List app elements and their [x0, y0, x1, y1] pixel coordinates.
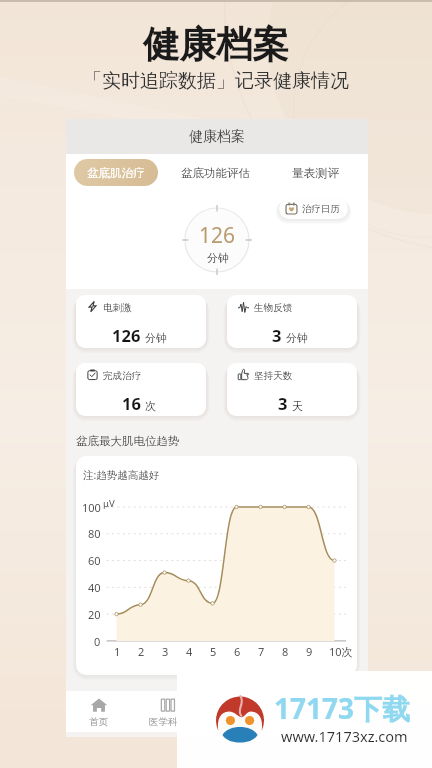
staticText: 健康档案	[189, 128, 245, 146]
staticText: 60	[88, 553, 101, 568]
button[interactable]: 医学科普	[133, 691, 203, 732]
staticText: 生物反馈	[254, 302, 293, 314]
staticText: 盆底最大肌电位趋势	[76, 434, 180, 448]
button[interactable]: 健康档案	[202, 691, 272, 732]
staticText: 7	[258, 644, 265, 659]
button[interactable]: 完成治疗	[76, 363, 206, 416]
staticText: 80	[88, 526, 101, 541]
staticText: 我的	[298, 716, 317, 728]
button[interactable]: 盆底肌治疗	[74, 159, 158, 186]
button[interactable]: 首页	[63, 691, 133, 732]
staticText: 治疗日历	[302, 203, 340, 215]
staticText: 天	[292, 399, 303, 413]
staticText: 126	[112, 324, 141, 346]
button[interactable]: 盆底功能评估	[181, 166, 250, 180]
staticText: 「实时追踪数据」记录健康情况	[83, 69, 349, 93]
staticText: 完成治疗	[103, 370, 142, 382]
staticText: 8	[282, 644, 289, 659]
button[interactable]: 量表测评	[292, 166, 340, 181]
staticText: 1	[114, 644, 121, 659]
staticText: 健康档案	[143, 22, 289, 68]
staticText: 量表测评	[292, 166, 340, 181]
staticText: 40	[88, 580, 101, 595]
staticText: 分钟	[145, 331, 167, 345]
button[interactable]: 坚持天数	[227, 363, 357, 416]
button[interactable]: 治疗日历	[279, 198, 348, 219]
staticText: 0	[94, 634, 101, 649]
staticText: 首页	[89, 716, 108, 728]
button[interactable]: 我的	[272, 691, 342, 732]
staticText: μV	[103, 497, 115, 510]
staticText: 5	[210, 644, 217, 659]
staticText: 126	[199, 221, 236, 250]
staticText: 4	[186, 644, 193, 659]
staticText: 电刺激	[103, 302, 132, 314]
staticText: 10次	[329, 644, 353, 659]
staticText: 注:趋势越高越好	[83, 468, 160, 482]
button[interactable]: 生物反馈	[227, 295, 357, 348]
staticText: 16	[122, 392, 141, 414]
staticText: 盆底功能评估	[181, 166, 250, 180]
staticText: 6	[234, 644, 241, 659]
staticText: 3	[278, 392, 288, 414]
staticText: 17173下载	[274, 689, 411, 727]
staticText: 健康档案	[218, 716, 256, 728]
staticText: 分钟	[207, 251, 229, 265]
staticText: 次	[145, 399, 156, 413]
staticText: 9	[306, 644, 313, 659]
staticText: 盆底肌治疗	[87, 166, 145, 180]
staticText: 坚持天数	[254, 370, 293, 382]
staticText: 100	[82, 500, 101, 515]
staticText: 分钟	[286, 331, 308, 345]
staticText: 2	[138, 644, 145, 659]
staticText: 3	[162, 644, 169, 659]
button[interactable]: 电刺激	[76, 295, 206, 348]
staticText: 20	[88, 607, 101, 622]
staticText: 3	[272, 324, 282, 346]
staticText: www.17173xz.com	[281, 726, 408, 746]
staticText: 医学科普	[149, 716, 187, 728]
